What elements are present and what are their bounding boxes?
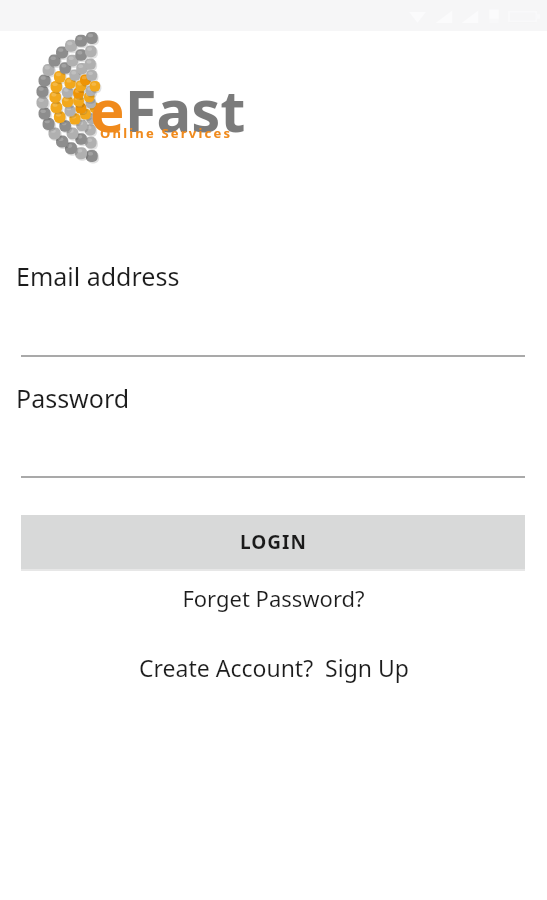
button[interactable]: Create Account? Sign Up: [0, 650, 547, 684]
staticText: Password: [16, 381, 130, 415]
staticText: Create Account? Sign Up: [139, 652, 409, 683]
staticText: LOGIN: [240, 529, 307, 555]
button[interactable]: Forget Password?: [0, 582, 547, 614]
staticText: Forget Password?: [182, 583, 365, 613]
staticText: Online Services: [100, 124, 233, 142]
staticText: Email address: [16, 259, 180, 293]
staticText: eFast: [90, 70, 246, 149]
button[interactable]: LOGIN: [21, 515, 525, 569]
